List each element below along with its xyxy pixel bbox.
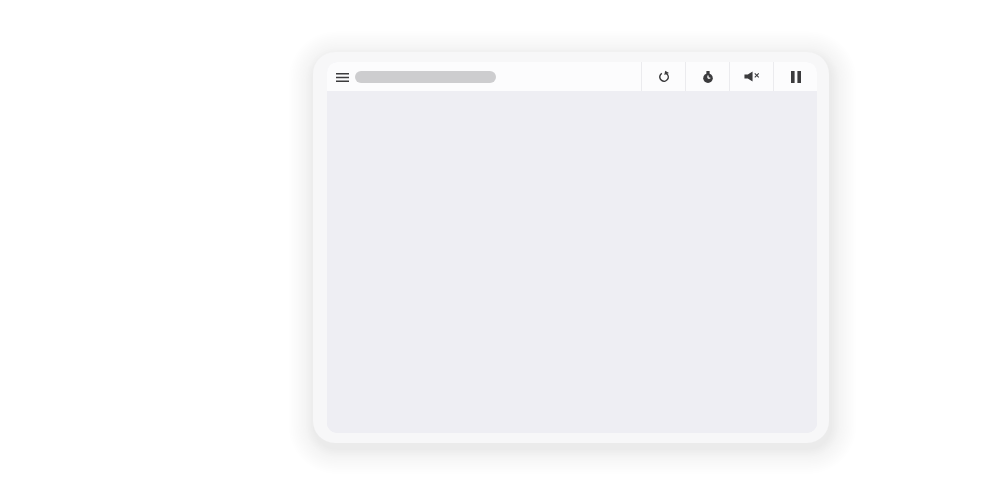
button[interactable]: Pause: [774, 62, 817, 91]
button[interactable]: Menu: [330, 65, 354, 89]
button[interactable]: Address bar: [355, 71, 496, 83]
button[interactable]: Mute: [730, 62, 773, 91]
button[interactable]: Restart: [642, 62, 685, 91]
button[interactable]: Timer: [686, 62, 729, 91]
